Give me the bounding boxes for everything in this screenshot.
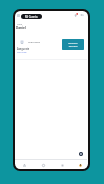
button[interactable]: Notifications [74, 13, 78, 17]
button[interactable]: Tab 3 [58, 161, 66, 169]
button[interactable]: Profile [79, 152, 83, 156]
button[interactable]: Mi Cuenta [21, 14, 42, 19]
button[interactable]: Tab 4 [76, 161, 84, 169]
staticText: Hola, [17, 22, 23, 25]
button[interactable]: Account [80, 13, 84, 17]
staticText: SOLICITA SEGURO [68, 42, 78, 48]
button[interactable]: Tab 2 [39, 161, 47, 169]
staticText: Daniel [16, 26, 26, 30]
staticText: Asegurate [17, 47, 30, 50]
staticText: Seguridad [28, 40, 41, 43]
button[interactable] [16, 36, 85, 59]
staticText: Mi Cuenta [25, 15, 38, 19]
button[interactable]: SOLICITA SEGURO [62, 39, 84, 50]
button[interactable]: Tab 1 [20, 161, 28, 169]
staticText: Ver mas [17, 50, 27, 53]
